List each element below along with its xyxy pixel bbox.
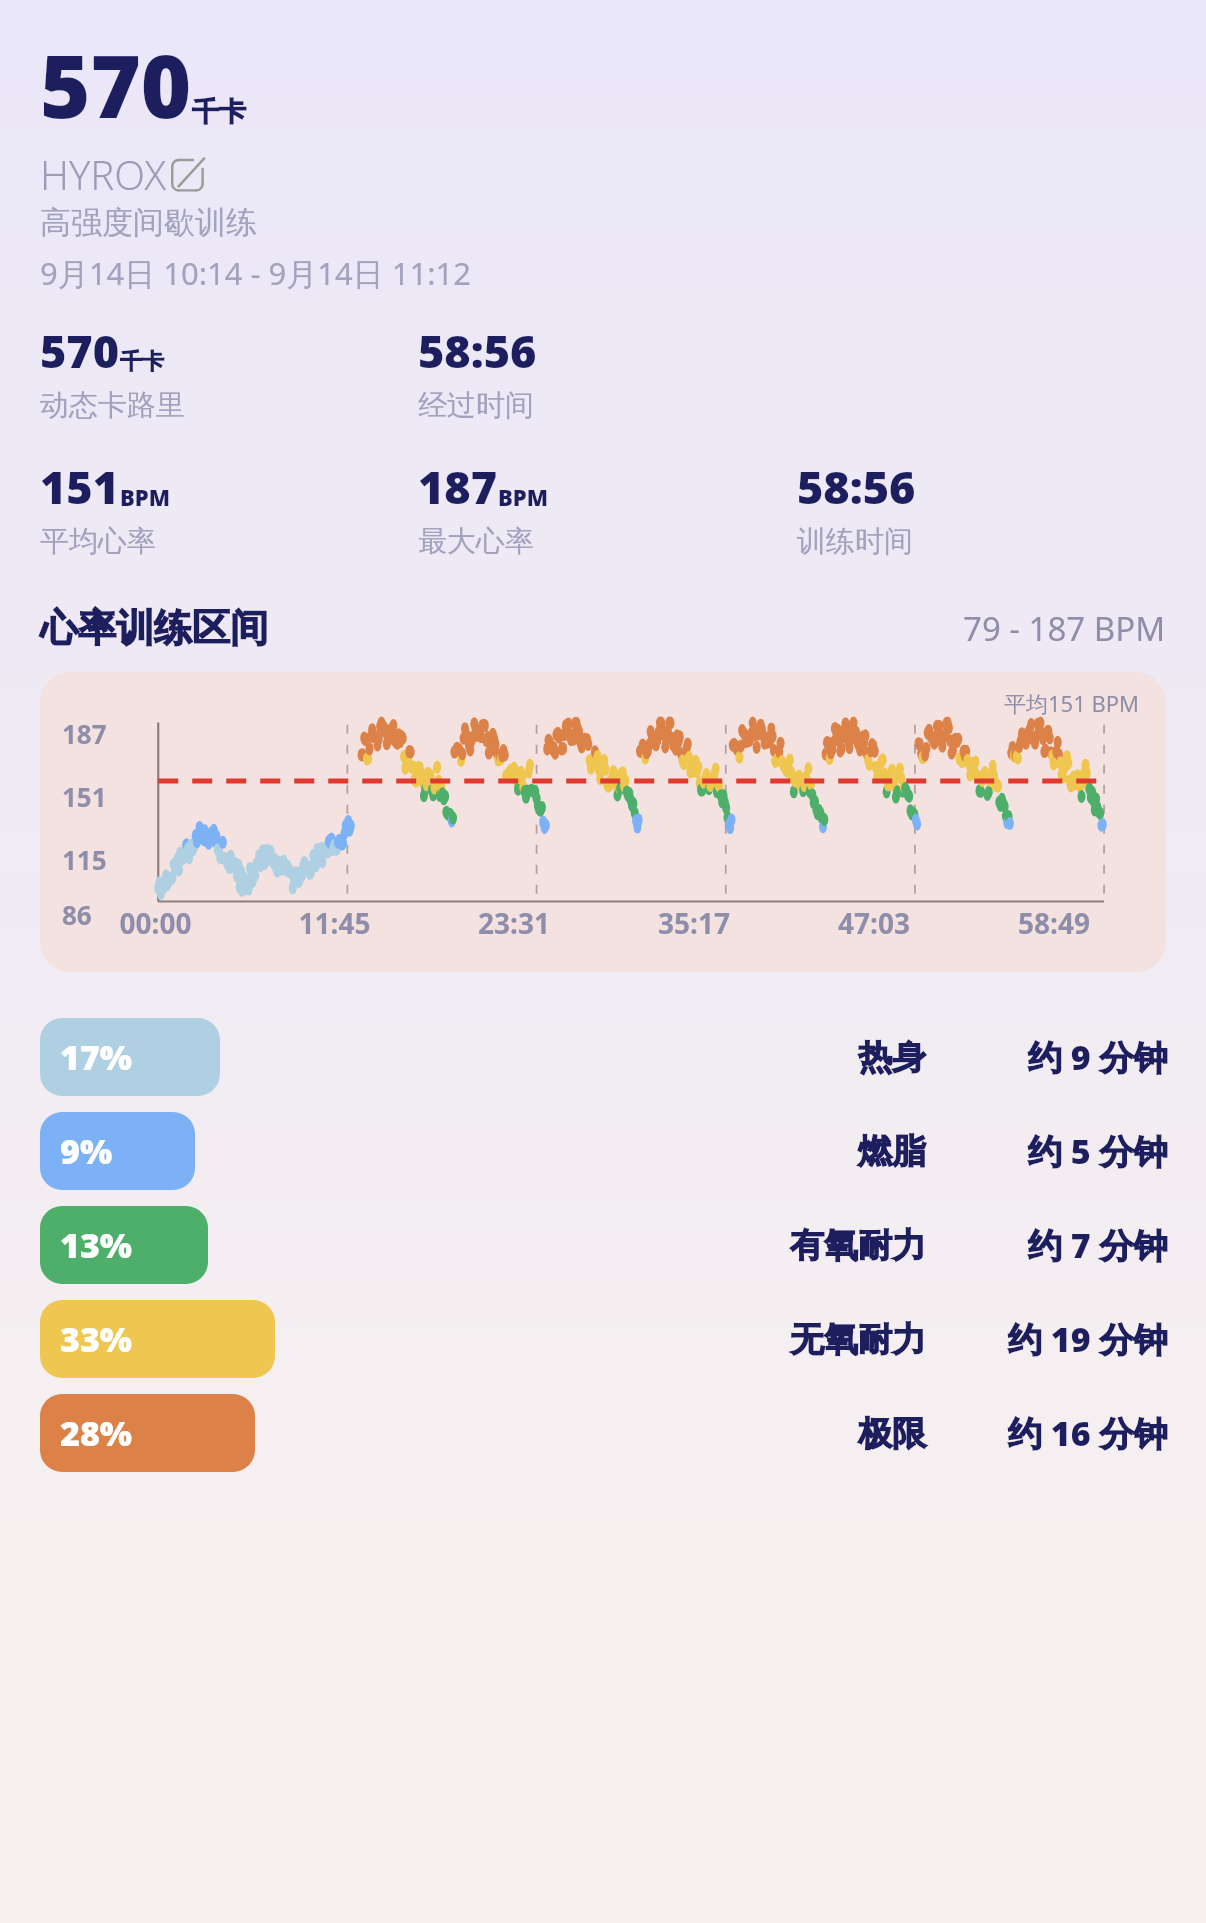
staticText: 约 9 分钟 [1028, 1034, 1168, 1080]
staticText: 17% [60, 1034, 133, 1080]
staticText: 动态卡路里 [40, 387, 185, 424]
staticText: BPM [498, 482, 549, 512]
button[interactable]: 13% [0, 1198, 1206, 1292]
staticText: 约 7 分钟 [1028, 1222, 1168, 1268]
staticText: 570 [40, 320, 120, 381]
button[interactable]: Heart rate chart [40, 672, 1166, 972]
staticText: 35:17 [604, 904, 784, 942]
staticText: 9月14日 10:14 - 9月14日 11:12 [40, 252, 472, 294]
staticText: 约 5 分钟 [1028, 1128, 1168, 1174]
staticText: 热身 [858, 1036, 926, 1079]
staticText: 86 [62, 897, 92, 932]
staticText: BPM [120, 482, 171, 512]
staticText: 58:49 [964, 904, 1144, 942]
staticText: 47:03 [784, 904, 964, 942]
staticText: 高强度间歇训练 [40, 203, 257, 242]
staticText: 187 [418, 456, 498, 517]
staticText: 经过时间 [418, 387, 534, 424]
button[interactable]: 17% [0, 1010, 1206, 1104]
staticText: HYROX [40, 147, 167, 201]
staticText: 最大心率 [418, 523, 534, 560]
staticText: 燃脂 [858, 1130, 926, 1173]
button[interactable]: Edit workout name HYROX [40, 147, 213, 201]
button[interactable]: 33% [0, 1292, 1206, 1386]
staticText: 79 - 187 BPM [963, 606, 1166, 651]
staticText: 心率训练区间 [40, 604, 268, 652]
staticText: 平均151 BPM [1004, 688, 1140, 718]
button[interactable]: 28% [0, 1386, 1206, 1480]
staticText: 187 [62, 716, 107, 751]
staticText: 151 [40, 456, 120, 517]
staticText: 约 19 分钟 [1008, 1316, 1168, 1362]
staticText: 千卡 [120, 348, 164, 376]
staticText: 28% [60, 1410, 133, 1456]
staticText: 13% [60, 1222, 133, 1268]
staticText: 约 16 分钟 [1008, 1410, 1168, 1456]
staticText: 151 [62, 779, 107, 814]
staticText: 千卡 [192, 95, 246, 129]
staticText: 有氧耐力 [790, 1224, 926, 1267]
staticText: 极限 [858, 1412, 926, 1455]
staticText: 58:56 [418, 320, 537, 381]
staticText: 00:00 [66, 904, 245, 942]
button[interactable]: 9% [0, 1104, 1206, 1198]
staticText: 无氧耐力 [790, 1318, 926, 1361]
staticText: 训练时间 [797, 523, 913, 560]
staticText: 11:45 [245, 904, 424, 942]
staticText: 58:56 [797, 456, 916, 517]
staticText: 23:31 [424, 904, 604, 942]
staticText: 115 [62, 842, 107, 877]
staticText: 9% [60, 1128, 113, 1174]
staticText: 33% [60, 1316, 133, 1362]
staticText: 平均心率 [40, 523, 156, 560]
staticText: 570 [40, 26, 192, 143]
